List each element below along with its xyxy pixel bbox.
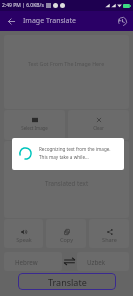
button[interactable]: Clear bbox=[68, 110, 129, 140]
staticText: Copy bbox=[60, 236, 73, 243]
staticText: Share bbox=[102, 236, 117, 243]
staticText: Clear bbox=[93, 125, 104, 131]
staticText: Recognizing text from the image. bbox=[39, 146, 111, 152]
staticText: 2:49 PM | 6.0KB/s bbox=[2, 2, 44, 9]
staticText: Text Got From The Image Here bbox=[28, 60, 105, 67]
staticText: Select Image bbox=[21, 125, 48, 131]
button[interactable]: Copy bbox=[46, 219, 86, 248]
button[interactable]: Uzbek bbox=[77, 252, 129, 271]
button[interactable]: Share bbox=[89, 219, 129, 248]
staticText: Translate bbox=[48, 276, 87, 288]
button[interactable]: Select Image bbox=[4, 110, 65, 140]
staticText: Speak bbox=[16, 236, 32, 243]
staticText: Translated text bbox=[45, 179, 89, 187]
button[interactable]: History bbox=[115, 14, 129, 28]
button[interactable]: Back bbox=[4, 14, 18, 28]
staticText: Hebrew bbox=[15, 258, 38, 266]
button[interactable]: Hebrew bbox=[4, 252, 62, 271]
staticText: Uzbek bbox=[87, 258, 106, 266]
button[interactable]: Translated text bbox=[4, 141, 129, 218]
staticText: Image Translate bbox=[23, 16, 77, 26]
staticText: This may take a while... bbox=[39, 154, 89, 160]
button[interactable]: Swap languages bbox=[62, 252, 77, 271]
button[interactable]: Speak bbox=[4, 219, 43, 248]
button[interactable]: Translate bbox=[18, 273, 116, 290]
